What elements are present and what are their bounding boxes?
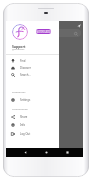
staticText: Share [20, 115, 28, 119]
staticText: Search... [20, 73, 31, 77]
staticText: Log Out [20, 132, 31, 136]
button[interactable]: Find [6, 57, 59, 64]
staticText: Find [20, 59, 26, 63]
button[interactable]: Back [23, 150, 28, 155]
button[interactable]: Navigate [77, 24, 81, 28]
staticText: Info [20, 123, 26, 127]
button[interactable]: Share [6, 113, 59, 120]
staticText: @fsupport [12, 47, 25, 50]
staticText: Preferences [12, 90, 26, 93]
staticText: Support [12, 44, 26, 49]
button[interactable] [8, 29, 81, 37]
button[interactable]: Settings [6, 96, 59, 103]
button[interactable]: Home [44, 150, 49, 155]
button[interactable]: Log Out [6, 130, 59, 137]
button[interactable]: Recents [65, 150, 70, 155]
staticText: Communicate [12, 107, 28, 110]
button[interactable]: Info [6, 121, 59, 128]
staticText: Settings [20, 98, 31, 102]
staticText: NOTIFICATIONS [36, 30, 51, 34]
button[interactable]: NOTIFICATIONS [36, 29, 51, 34]
staticText: Discover [20, 66, 31, 70]
button[interactable]: Discover [6, 64, 59, 71]
button[interactable]: Profile [12, 24, 28, 40]
button[interactable]: Search... [6, 71, 59, 78]
